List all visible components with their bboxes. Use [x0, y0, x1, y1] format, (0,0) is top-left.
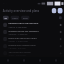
staticText: 7:05 AM · 5.2 km today	[8, 26, 26, 28]
staticText: Book club discussion night	[8, 36, 37, 39]
button[interactable]: Grocery list for the weekend	[3, 28, 62, 35]
button[interactable]: Saved	[32, 57, 48, 64]
staticText: Activity overview and plans	[3, 9, 39, 13]
staticText: Budget plan review notes	[8, 43, 35, 46]
staticText: Grocery list for the weekend	[8, 29, 38, 32]
button[interactable]: All	[5, 15, 7, 20]
button[interactable]: Profile	[57, 8, 63, 14]
button[interactable]: Morning run in the city park	[3, 21, 62, 28]
button[interactable]: Notifications	[52, 8, 57, 13]
button[interactable]: Budget plan review notes	[3, 43, 62, 50]
button[interactable]: Profile	[48, 57, 64, 64]
button[interactable]: Trip ideas and places	[3, 50, 62, 57]
button[interactable]: Plans	[23, 15, 28, 20]
staticText: Yesterday · 12 items left	[8, 33, 27, 35]
staticText: Morning run in the city park	[8, 22, 38, 25]
button[interactable]: Notes	[12, 15, 18, 20]
staticText: Tuesday · 3 shared notes	[8, 40, 28, 42]
button[interactable]: Book club discussion night	[3, 36, 62, 43]
button[interactable]: Filter	[59, 16, 62, 19]
button[interactable]: Search	[16, 57, 32, 64]
staticText: Plans	[23, 16, 28, 19]
staticText: Last week · draft copy	[8, 47, 26, 49]
button[interactable]: Home	[0, 57, 16, 64]
staticText: Notes	[12, 16, 18, 19]
staticText: All	[5, 16, 7, 19]
staticText: Trip ideas and places	[8, 50, 31, 54]
